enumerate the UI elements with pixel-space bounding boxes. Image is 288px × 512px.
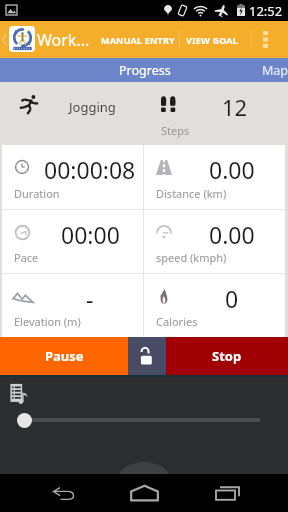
staticText: 0 (225, 283, 239, 309)
button[interactable]: Volume (17, 413, 32, 428)
staticText: MANUAL ENTRY (101, 34, 175, 46)
button[interactable]: VIEW GOAL (181, 21, 243, 58)
button[interactable]: 00:00:08 (2, 145, 143, 209)
button[interactable]: Stop (166, 337, 288, 375)
staticText: Pause (45, 347, 84, 365)
staticText: 00:00 (61, 219, 120, 245)
staticText: Jogging (69, 98, 116, 116)
staticText: 0.00 (209, 219, 255, 245)
staticText: Steps (161, 123, 190, 138)
button[interactable]: Map (262, 58, 288, 82)
staticText: Calories (156, 314, 198, 329)
staticText: Elevation (m) (14, 314, 81, 329)
staticText: Map (262, 62, 288, 79)
staticText: Distance (km) (156, 186, 227, 201)
staticText: 0.00 (209, 154, 255, 180)
staticText: - (86, 283, 94, 309)
button[interactable]: Back (0, 21, 9, 58)
button[interactable]: Playlist (7, 381, 31, 407)
staticText: VIEW GOAL (186, 34, 238, 46)
button[interactable]: 0.00 (144, 210, 285, 273)
button[interactable]: More options (254, 21, 276, 58)
staticText: 12 (222, 92, 248, 122)
staticText: Pace (14, 250, 39, 265)
button[interactable]: - (2, 274, 143, 337)
staticText: speed (kmph) (156, 250, 227, 265)
button[interactable]: Home (118, 474, 170, 512)
staticText: Work... (37, 29, 90, 51)
button[interactable]: Progress (28, 58, 262, 82)
staticText: 12:52 (249, 2, 283, 20)
button[interactable]: 0 (144, 274, 285, 337)
button[interactable]: Lock (128, 337, 166, 375)
button[interactable]: Pause (0, 337, 128, 375)
button[interactable]: 00:00 (2, 210, 143, 273)
button[interactable]: MANUAL ENTRY (96, 21, 180, 58)
button[interactable]: Recents (201, 474, 253, 512)
staticText: Progress (119, 62, 171, 79)
button[interactable]: Jogging (0, 82, 144, 144)
staticText: Duration (14, 186, 60, 201)
staticText: 00:00:08 (44, 154, 136, 180)
button[interactable]: Back (38, 474, 90, 512)
staticText: Stop (212, 347, 242, 365)
button[interactable]: 0.00 (144, 145, 285, 209)
